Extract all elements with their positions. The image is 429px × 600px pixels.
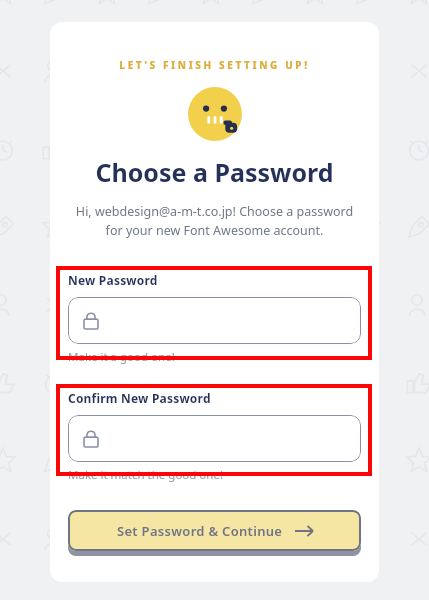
staticText: Hi, webdesign@a-m-t.co.jp! Choose a pass…	[64, 203, 365, 239]
button[interactable]: Set Password & Continue	[68, 510, 361, 551]
staticText: Make it a good one!	[68, 349, 175, 365]
button[interactable]: Confirm New Password	[68, 415, 361, 462]
staticText: New Password	[68, 272, 158, 288]
staticText: Set Password & Continue	[117, 522, 283, 540]
button[interactable]: New Password	[68, 297, 361, 344]
staticText: Make it match the good one!	[68, 467, 224, 483]
staticText: LET'S FINISH SETTING UP!	[119, 58, 310, 72]
staticText: Choose a Password	[95, 155, 334, 189]
staticText: Confirm New Password	[68, 390, 211, 406]
